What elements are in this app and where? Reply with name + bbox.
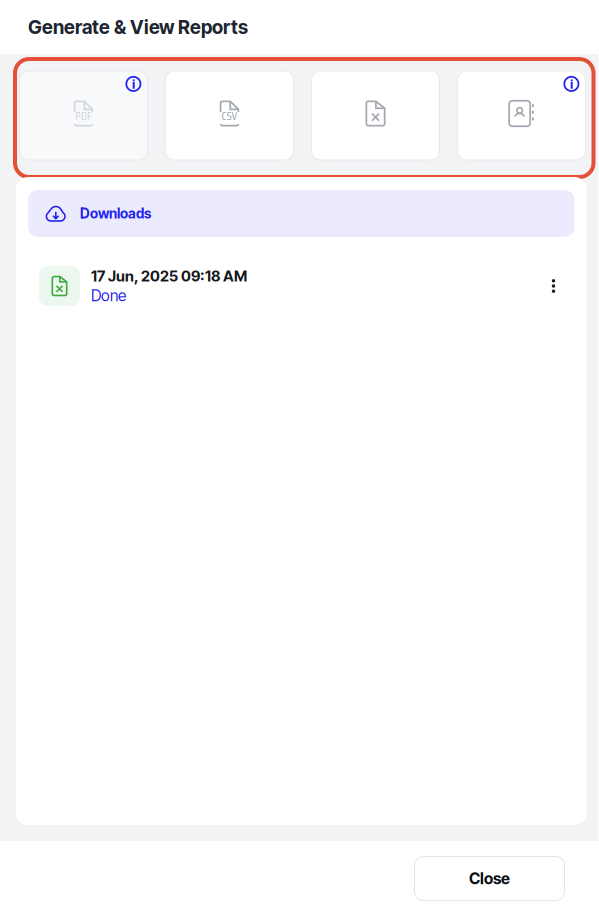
button[interactable]: CSV xyxy=(165,71,293,160)
button[interactable]: Contacts xyxy=(457,71,585,160)
staticText: Close xyxy=(469,869,510,888)
staticText: i xyxy=(570,76,573,92)
staticText: Done xyxy=(91,286,126,305)
button[interactable]: 17 Jun, 2025 09:18 AM xyxy=(16,259,586,313)
staticText: i xyxy=(132,76,135,92)
staticText: Downloads xyxy=(80,205,151,222)
staticText: 17 Jun, 2025 09:18 AM xyxy=(91,267,247,285)
button[interactable]: Excel xyxy=(311,71,439,160)
staticText: Generate & View Reports xyxy=(28,15,248,38)
staticText: CSV xyxy=(221,106,237,125)
button[interactable]: PDF xyxy=(19,71,147,160)
staticText: PDF xyxy=(75,106,92,125)
button[interactable]: Downloads xyxy=(28,190,574,237)
button[interactable]: Close xyxy=(414,856,564,900)
